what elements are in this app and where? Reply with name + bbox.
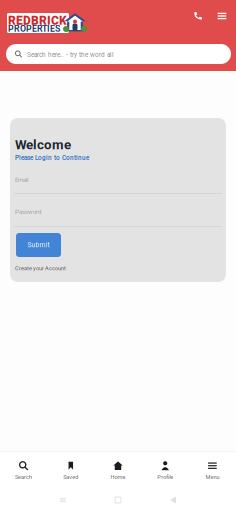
button[interactable]: Search (0, 455, 47, 485)
staticText: Search here.. - try the word all (27, 51, 114, 58)
button[interactable]: Home (94, 455, 142, 485)
staticText: Password (15, 208, 41, 215)
button[interactable]: Profile (142, 455, 189, 485)
staticText: Saved (63, 474, 78, 480)
staticText: PROPERTIES (8, 23, 60, 34)
button[interactable]: Create your Account (15, 265, 66, 272)
button[interactable]: Search here.. - try the word all (6, 44, 231, 64)
button[interactable]: Call (188, 6, 208, 26)
button[interactable]: Menu (189, 455, 236, 485)
staticText: Menu (205, 474, 219, 480)
staticText: Email (15, 176, 28, 183)
staticText: Welcome (15, 137, 71, 153)
staticText: Submit (27, 241, 49, 249)
button[interactable]: Saved (47, 455, 94, 485)
staticText: REDBRICK (8, 13, 67, 28)
button[interactable]: Submit (16, 233, 61, 257)
staticText: Profile (157, 474, 173, 480)
staticText: Create your Account (15, 265, 66, 272)
button[interactable]: Home (111, 493, 125, 507)
button[interactable]: Back (166, 493, 180, 507)
button[interactable]: Menu (212, 6, 232, 26)
staticText: Search (15, 474, 32, 480)
staticText: Please Login to Continue (15, 154, 89, 161)
button[interactable]: Recents (56, 493, 70, 507)
staticText: Home (110, 474, 125, 480)
